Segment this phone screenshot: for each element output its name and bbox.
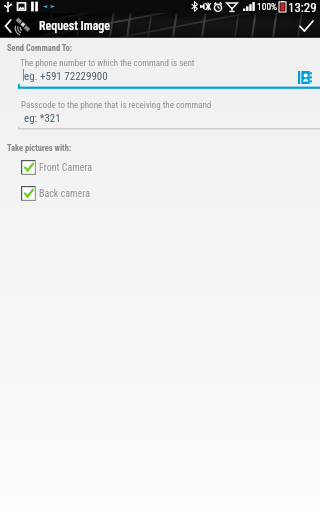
staticText: Back camera	[39, 188, 90, 200]
staticText: Request Image	[39, 19, 111, 33]
button[interactable]: Select contact	[296, 68, 314, 86]
staticText: Send Command To:	[7, 43, 73, 53]
staticText: Take pictures with:	[7, 143, 72, 153]
staticText: eg: *321	[24, 112, 61, 125]
staticText: 100%	[257, 1, 278, 12]
staticText: 13:29	[288, 0, 317, 13]
button[interactable]: Done	[294, 13, 320, 38]
staticText: Front Camera	[39, 162, 93, 174]
button[interactable]: Back camera	[0, 185, 320, 202]
staticText: Passcode to the phone that is receiving …	[21, 100, 212, 111]
button[interactable]: The phone number to which the command is…	[14, 54, 292, 88]
button[interactable]: Front Camera	[0, 159, 320, 176]
button[interactable]: Navigate up	[0, 13, 15, 38]
staticText: The phone number to which the command is…	[20, 58, 195, 69]
staticText: eg. +591 72229900	[24, 70, 108, 83]
button[interactable]: Passcode to the phone that is receiving …	[14, 96, 320, 126]
